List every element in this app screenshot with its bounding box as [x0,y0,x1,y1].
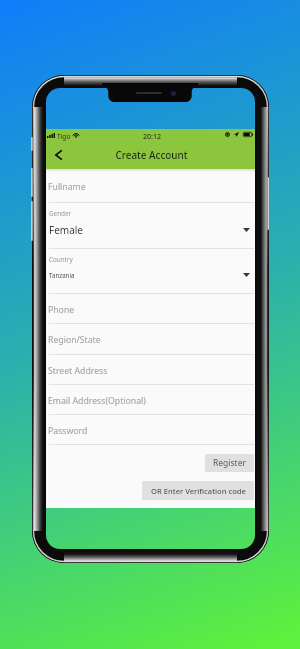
staticText: Create Account [47,148,255,161]
staticText: Region/State [48,334,101,346]
button[interactable]: Password [46,415,255,444]
staticText: Tanzania [49,271,75,279]
staticText: 20:12 [143,131,162,141]
staticText: Female [49,223,84,237]
staticText: Gender [49,209,72,218]
staticText: Register [213,457,246,469]
button[interactable]: Back [49,143,68,167]
button[interactable]: Country [46,249,255,293]
staticText: Phone [48,304,75,316]
staticText: Password [48,425,88,437]
button[interactable]: Fullname [46,169,255,202]
button[interactable]: Street Address [46,355,255,384]
button[interactable]: OR Enter Verification code [142,481,254,500]
button[interactable]: Phone [46,294,255,323]
button[interactable]: Gender [46,203,255,248]
staticText: Tigo [57,132,71,141]
staticText: Street Address [48,365,108,377]
staticText: OR Enter Verification code [151,486,246,496]
staticText: Email Address(Optional) [48,395,146,407]
button[interactable]: Region/State [46,324,255,354]
staticText: Country [49,255,73,264]
button[interactable]: Email Address(Optional) [46,385,255,414]
button[interactable]: Register [205,454,254,472]
staticText: Fullname [48,181,86,193]
